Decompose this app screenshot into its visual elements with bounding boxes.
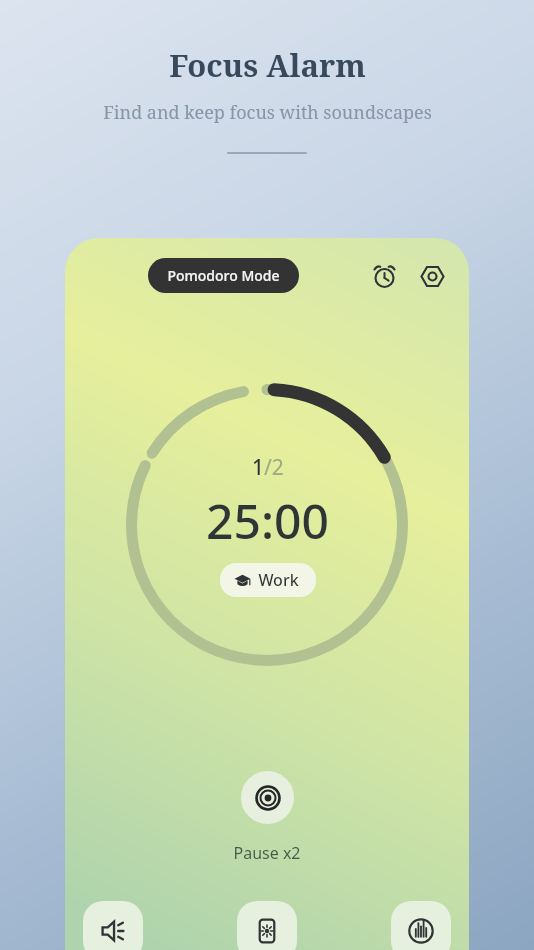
button[interactable]: Work bbox=[220, 563, 316, 597]
button[interactable]: Pause bbox=[241, 771, 294, 824]
staticText: Pause x2 bbox=[233, 842, 301, 864]
staticText: Work bbox=[258, 569, 299, 591]
button[interactable]: Alarm bbox=[367, 259, 401, 293]
staticText: Find and keep focus with soundscapes bbox=[103, 100, 432, 125]
button[interactable]: Scene bbox=[237, 901, 297, 950]
button[interactable]: Settings bbox=[415, 259, 449, 293]
staticText: 1/2 bbox=[252, 453, 284, 482]
button[interactable]: Pomodoro Mode bbox=[148, 258, 299, 293]
button[interactable]: Soundscape bbox=[391, 901, 451, 950]
staticText: Focus Alarm bbox=[169, 44, 366, 86]
staticText: 25:00 bbox=[206, 488, 329, 553]
staticText: Pomodoro Mode bbox=[167, 266, 280, 285]
button[interactable]: Sound bbox=[83, 901, 143, 950]
